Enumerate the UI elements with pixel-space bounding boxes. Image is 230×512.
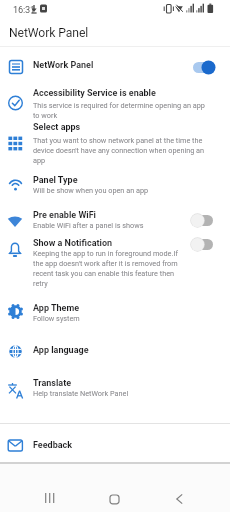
- staticText: That you want to show network panel at t…: [33, 136, 205, 165]
- staticText: Show a Notification: [33, 238, 113, 249]
- staticText: NetWork Panel: [33, 60, 94, 71]
- button[interactable]: Pre enable WiFi: [0, 203, 230, 234]
- staticText: NetWork Panel: [9, 26, 89, 40]
- staticText: Accessibility Service is enable: [33, 88, 156, 99]
- button[interactable]: Translate: [0, 371, 230, 402]
- button[interactable]: Accessibility Service is enable: [0, 84, 230, 122]
- staticText: Will be show when you open an app: [33, 186, 149, 195]
- button[interactable]: Panel Type: [0, 170, 230, 200]
- button[interactable]: App Theme: [0, 297, 230, 327]
- staticText: Pre enable WiFi: [33, 210, 96, 221]
- staticText: Translate: [33, 378, 72, 389]
- button[interactable]: NetWork Panel: [0, 52, 230, 82]
- staticText: Keeping the app to run in foreground mod…: [33, 249, 178, 288]
- button[interactable]: [36, 486, 64, 512]
- staticText: 16:31: [13, 4, 35, 15]
- button[interactable]: Feedback: [0, 424, 230, 462]
- button[interactable]: Show a Notification: [0, 234, 230, 294]
- button[interactable]: Select apps: [0, 120, 230, 168]
- staticText: App Theme: [33, 303, 80, 314]
- staticText: App language: [33, 345, 89, 356]
- staticText: Panel Type: [33, 175, 78, 186]
- staticText: Help translate NetWork Panel: [33, 389, 129, 398]
- button[interactable]: [166, 486, 194, 512]
- staticText: Select apps: [33, 122, 81, 133]
- staticText: Enable WiFi after a panel is shows: [33, 221, 144, 230]
- staticText: Feedback: [33, 440, 73, 451]
- staticText: Follow system: [33, 314, 80, 323]
- button[interactable]: [100, 486, 128, 512]
- button[interactable]: App language: [0, 337, 230, 363]
- staticText: This service is required for determine o…: [33, 101, 205, 120]
